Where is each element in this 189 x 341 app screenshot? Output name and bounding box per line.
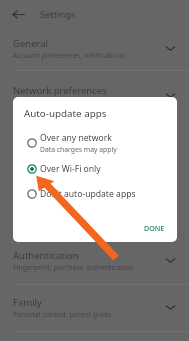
staticText: Fingerprint, purchase authentication xyxy=(13,263,134,273)
button[interactable]: Authentication xyxy=(0,243,189,279)
button[interactable]: Over any network xyxy=(13,131,177,155)
staticText: Account preferences, notifications xyxy=(13,51,125,61)
staticText: Settings xyxy=(40,8,76,21)
staticText: Network preferences xyxy=(13,84,107,97)
staticText: Over Wi-Fi only xyxy=(40,163,101,175)
staticText: Parental control, parent guide xyxy=(13,310,112,320)
button[interactable]: Network preferences xyxy=(0,78,189,114)
staticText: Family xyxy=(13,296,42,309)
staticText: Authentication xyxy=(13,249,79,262)
button[interactable]: Over Wi-Fi only xyxy=(13,157,177,181)
staticText: Data charges may apply xyxy=(40,145,117,154)
button[interactable]: Family xyxy=(0,290,189,326)
staticText: Over any network xyxy=(40,132,112,144)
button[interactable]: General xyxy=(0,31,189,67)
button[interactable]: Back xyxy=(4,0,32,28)
button[interactable]: DONE xyxy=(140,219,169,237)
staticText: Auto-update apps xyxy=(24,107,107,120)
staticText: Don't auto-update apps xyxy=(40,188,136,200)
staticText: General xyxy=(13,37,49,50)
button[interactable]: Don't auto-update apps xyxy=(13,182,177,206)
staticText: DONE xyxy=(144,223,165,233)
staticText: Wi-Fi, mobile data xyxy=(13,98,72,108)
